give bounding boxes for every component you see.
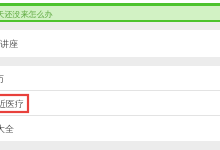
button[interactable]: 健康讲座 [0, 30, 220, 57]
staticText: 用药指南大全 [0, 123, 14, 134]
button[interactable]: 病历 [0, 66, 220, 90]
button[interactable]: 用药指南大全 [0, 116, 220, 140]
button[interactable]: 附近医疗 [0, 91, 220, 115]
staticText: 病历 [0, 73, 4, 84]
staticText: 经期推迟5天还没来怎么办 [0, 8, 53, 19]
button[interactable]: 经期推迟5天还没来怎么办 [0, 3, 220, 22]
staticText: 健康讲座 [0, 38, 18, 49]
staticText: 附近医疗 [0, 98, 24, 109]
